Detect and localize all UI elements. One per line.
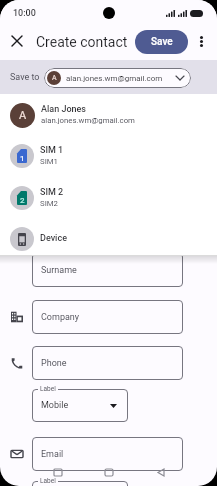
staticText: Save to — [10, 72, 40, 83]
staticText: A — [19, 109, 27, 122]
button[interactable]: Close — [5, 29, 29, 53]
staticText: Alan Jones — [41, 104, 87, 115]
staticText: Email — [41, 449, 64, 460]
staticText: Label — [40, 385, 56, 393]
button[interactable]: More options — [191, 29, 212, 53]
button[interactable]: A — [44, 68, 191, 88]
button[interactable]: Phone — [32, 346, 183, 380]
staticText: SIM 1 — [40, 145, 64, 156]
staticText: SIM2 — [40, 199, 58, 208]
staticText: alan.jones.wm@gmail.com — [66, 74, 163, 83]
staticText: A — [52, 74, 57, 82]
button[interactable]: Mobile — [32, 481, 128, 486]
button[interactable]: Save — [135, 30, 188, 54]
staticText: 1 — [20, 154, 25, 163]
staticText: Phone — [41, 358, 67, 369]
staticText: SIM 2 — [40, 187, 64, 198]
button[interactable]: 1 — [0, 135, 217, 177]
staticText: 10:00 — [13, 8, 36, 19]
button[interactable]: Mobile — [32, 389, 128, 422]
staticText: Label — [40, 477, 56, 485]
staticText: Surname — [41, 265, 77, 276]
staticText: alan.jones.wm@gmail.com — [41, 116, 135, 125]
button[interactable]: Company — [32, 300, 183, 334]
button[interactable]: Device — [0, 218, 217, 260]
button[interactable]: A — [0, 94, 217, 136]
button[interactable]: Home — [99, 462, 119, 483]
button[interactable]: Back — [151, 462, 171, 483]
staticText: SIM1 — [40, 157, 58, 166]
staticText: Mobile — [41, 400, 69, 411]
staticText: Save — [151, 36, 173, 48]
staticText: Device — [40, 233, 67, 244]
button[interactable]: Email — [32, 437, 183, 471]
button[interactable]: Surname — [32, 253, 183, 287]
staticText: Create contact — [36, 34, 128, 50]
button[interactable]: 2 — [0, 177, 217, 219]
staticText: Company — [41, 312, 80, 323]
button[interactable]: Recents — [48, 462, 68, 483]
staticText: 2 — [20, 196, 25, 205]
